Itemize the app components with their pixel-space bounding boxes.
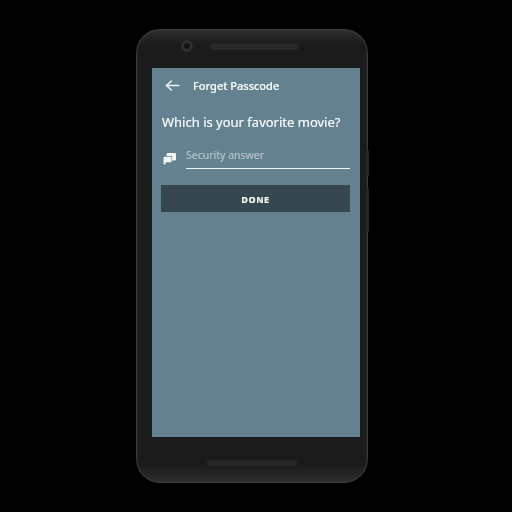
button[interactable]: Security answer xyxy=(161,148,350,169)
button[interactable]: Back xyxy=(160,73,184,97)
staticText: DONE xyxy=(241,193,270,205)
staticText: Which is your favorite movie? xyxy=(162,113,341,131)
staticText: Forget Passcode xyxy=(193,78,280,93)
staticText: Security answer xyxy=(186,148,265,162)
button[interactable]: DONE xyxy=(161,185,350,212)
